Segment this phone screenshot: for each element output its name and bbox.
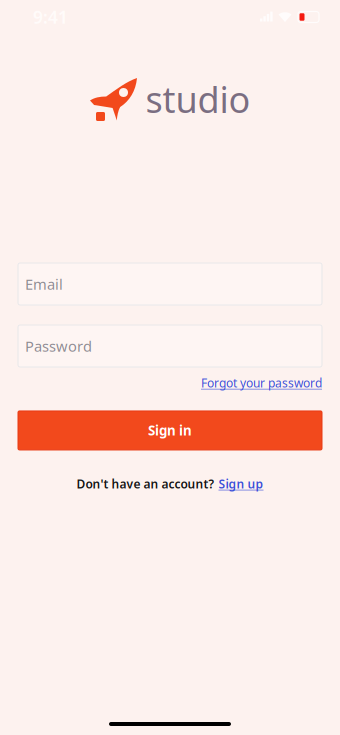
staticText: 9:41	[33, 5, 68, 28]
staticText: Don't have an account?	[76, 476, 214, 492]
button[interactable]: Sign up	[218, 476, 263, 492]
staticText: Password	[25, 336, 92, 356]
staticText: studio	[145, 75, 250, 123]
staticText: Sign in	[148, 422, 192, 439]
staticText: Email	[25, 274, 63, 294]
staticText: Sign up	[218, 476, 263, 492]
button[interactable]: Sign in	[18, 411, 322, 450]
button[interactable]: Forgot your password	[201, 375, 322, 391]
staticText: Forgot your password	[201, 375, 322, 391]
